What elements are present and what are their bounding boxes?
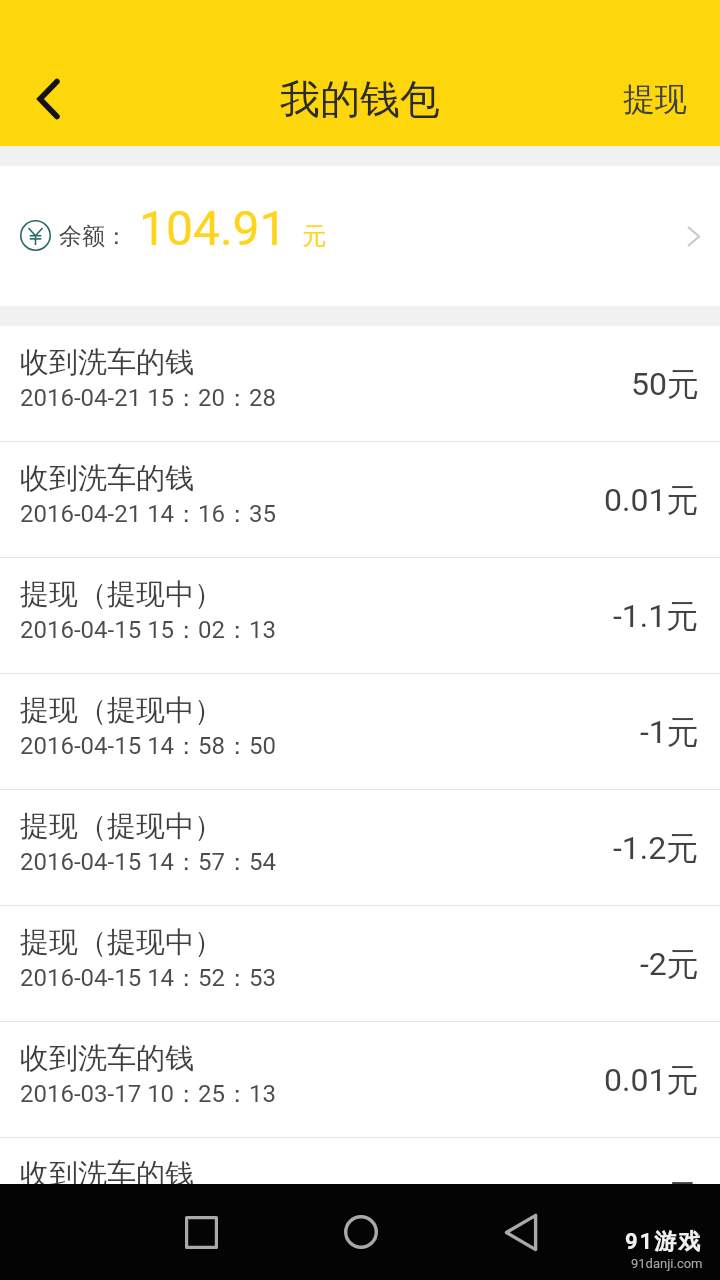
staticText: -2元 xyxy=(640,944,699,984)
button[interactable]: Recent apps xyxy=(165,1196,237,1268)
button[interactable]: 提现（提现中） xyxy=(0,790,720,906)
button[interactable]: Home xyxy=(325,1196,397,1268)
staticText: 0.01元 xyxy=(604,480,699,520)
button[interactable]: 收到洗车的钱 xyxy=(0,1138,720,1184)
staticText: 提现 xyxy=(623,79,687,119)
staticText: 收到洗车的钱 xyxy=(20,1156,194,1184)
staticText: 2016-04-15 14：58：50 xyxy=(20,731,277,761)
staticText: 提现（提现中） xyxy=(20,924,223,961)
button[interactable]: 提现（提现中） xyxy=(0,906,720,1022)
staticText: -1元 xyxy=(640,712,699,752)
button[interactable]: 提现（提现中） xyxy=(0,674,720,790)
button[interactable]: Back xyxy=(485,1196,557,1268)
staticText: 元 xyxy=(302,221,326,251)
staticText: 提现（提现中） xyxy=(20,808,223,845)
staticText: 2016-04-15 15：02：13 xyxy=(20,615,277,645)
button[interactable]: Back xyxy=(0,52,92,146)
staticText: 2016-04-21 15：20：28 xyxy=(20,383,277,413)
staticText: 收到洗车的钱 xyxy=(20,344,194,381)
staticText: 我的钱包 xyxy=(280,74,440,124)
staticText: 91游戏 xyxy=(625,1228,703,1256)
button[interactable]: 收到洗车的钱 xyxy=(0,1022,720,1138)
staticText: 104.91 xyxy=(139,200,287,256)
staticText: 余额： xyxy=(59,222,128,251)
button[interactable]: 提现 xyxy=(590,54,720,144)
staticText: 收到洗车的钱 xyxy=(20,1040,194,1077)
staticText: 收到洗车的钱 xyxy=(20,460,194,497)
staticText: 50元 xyxy=(631,364,699,404)
staticText: 2016-03-17 10：25：13 xyxy=(20,1079,277,1109)
button[interactable]: 提现（提现中） xyxy=(0,558,720,674)
staticText: 2016-04-21 14：16：35 xyxy=(20,499,277,529)
staticText: 0.01元 xyxy=(604,1176,699,1184)
button[interactable]: 余额： xyxy=(0,166,720,306)
staticText: 91danji.com xyxy=(631,1256,703,1271)
staticText: 2016-04-15 14：52：53 xyxy=(20,963,277,993)
staticText: 提现（提现中） xyxy=(20,692,223,729)
staticText: -1.2元 xyxy=(613,828,699,868)
staticText: 提现（提现中） xyxy=(20,576,223,613)
staticText: -1.1元 xyxy=(613,596,699,636)
button[interactable]: 收到洗车的钱 xyxy=(0,326,720,442)
button[interactable]: 收到洗车的钱 xyxy=(0,442,720,558)
staticText: 0.01元 xyxy=(604,1060,699,1100)
staticText: 2016-04-15 14：57：54 xyxy=(20,847,277,877)
